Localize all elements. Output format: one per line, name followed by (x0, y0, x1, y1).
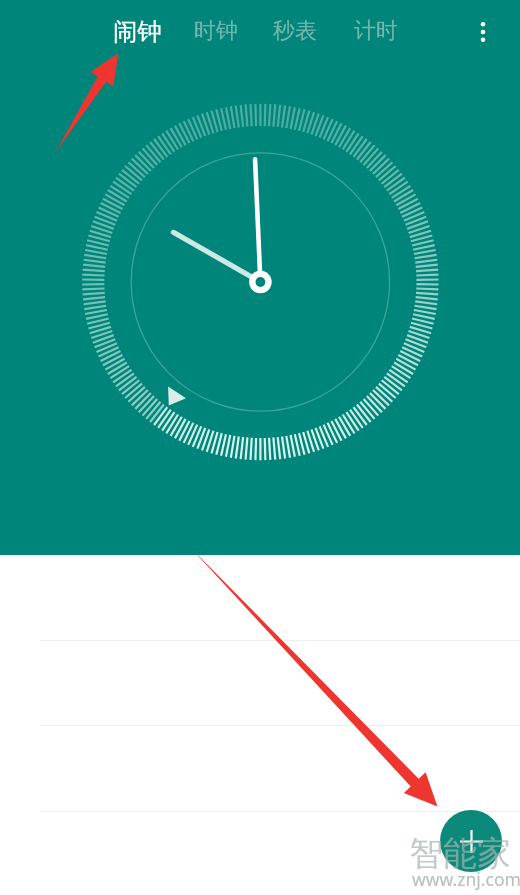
button[interactable]: 时钟 (186, 6, 246, 56)
button[interactable]: 秒表 (265, 6, 325, 56)
staticText: 计时 (354, 17, 398, 45)
staticText: www.znj.com (412, 867, 520, 891)
button[interactable] (0, 641, 520, 725)
button[interactable]: 闹钟 (105, 6, 170, 56)
staticText: 时钟 (194, 17, 238, 45)
button[interactable] (0, 555, 520, 640)
staticText: 闹钟 (113, 16, 162, 47)
button[interactable]: More options (459, 8, 507, 56)
button[interactable] (0, 726, 520, 811)
button[interactable]: Add alarm (440, 810, 502, 872)
staticText: 秒表 (273, 17, 317, 45)
button[interactable]: 计时 (346, 6, 406, 56)
staticText: 智能家 (409, 832, 511, 875)
